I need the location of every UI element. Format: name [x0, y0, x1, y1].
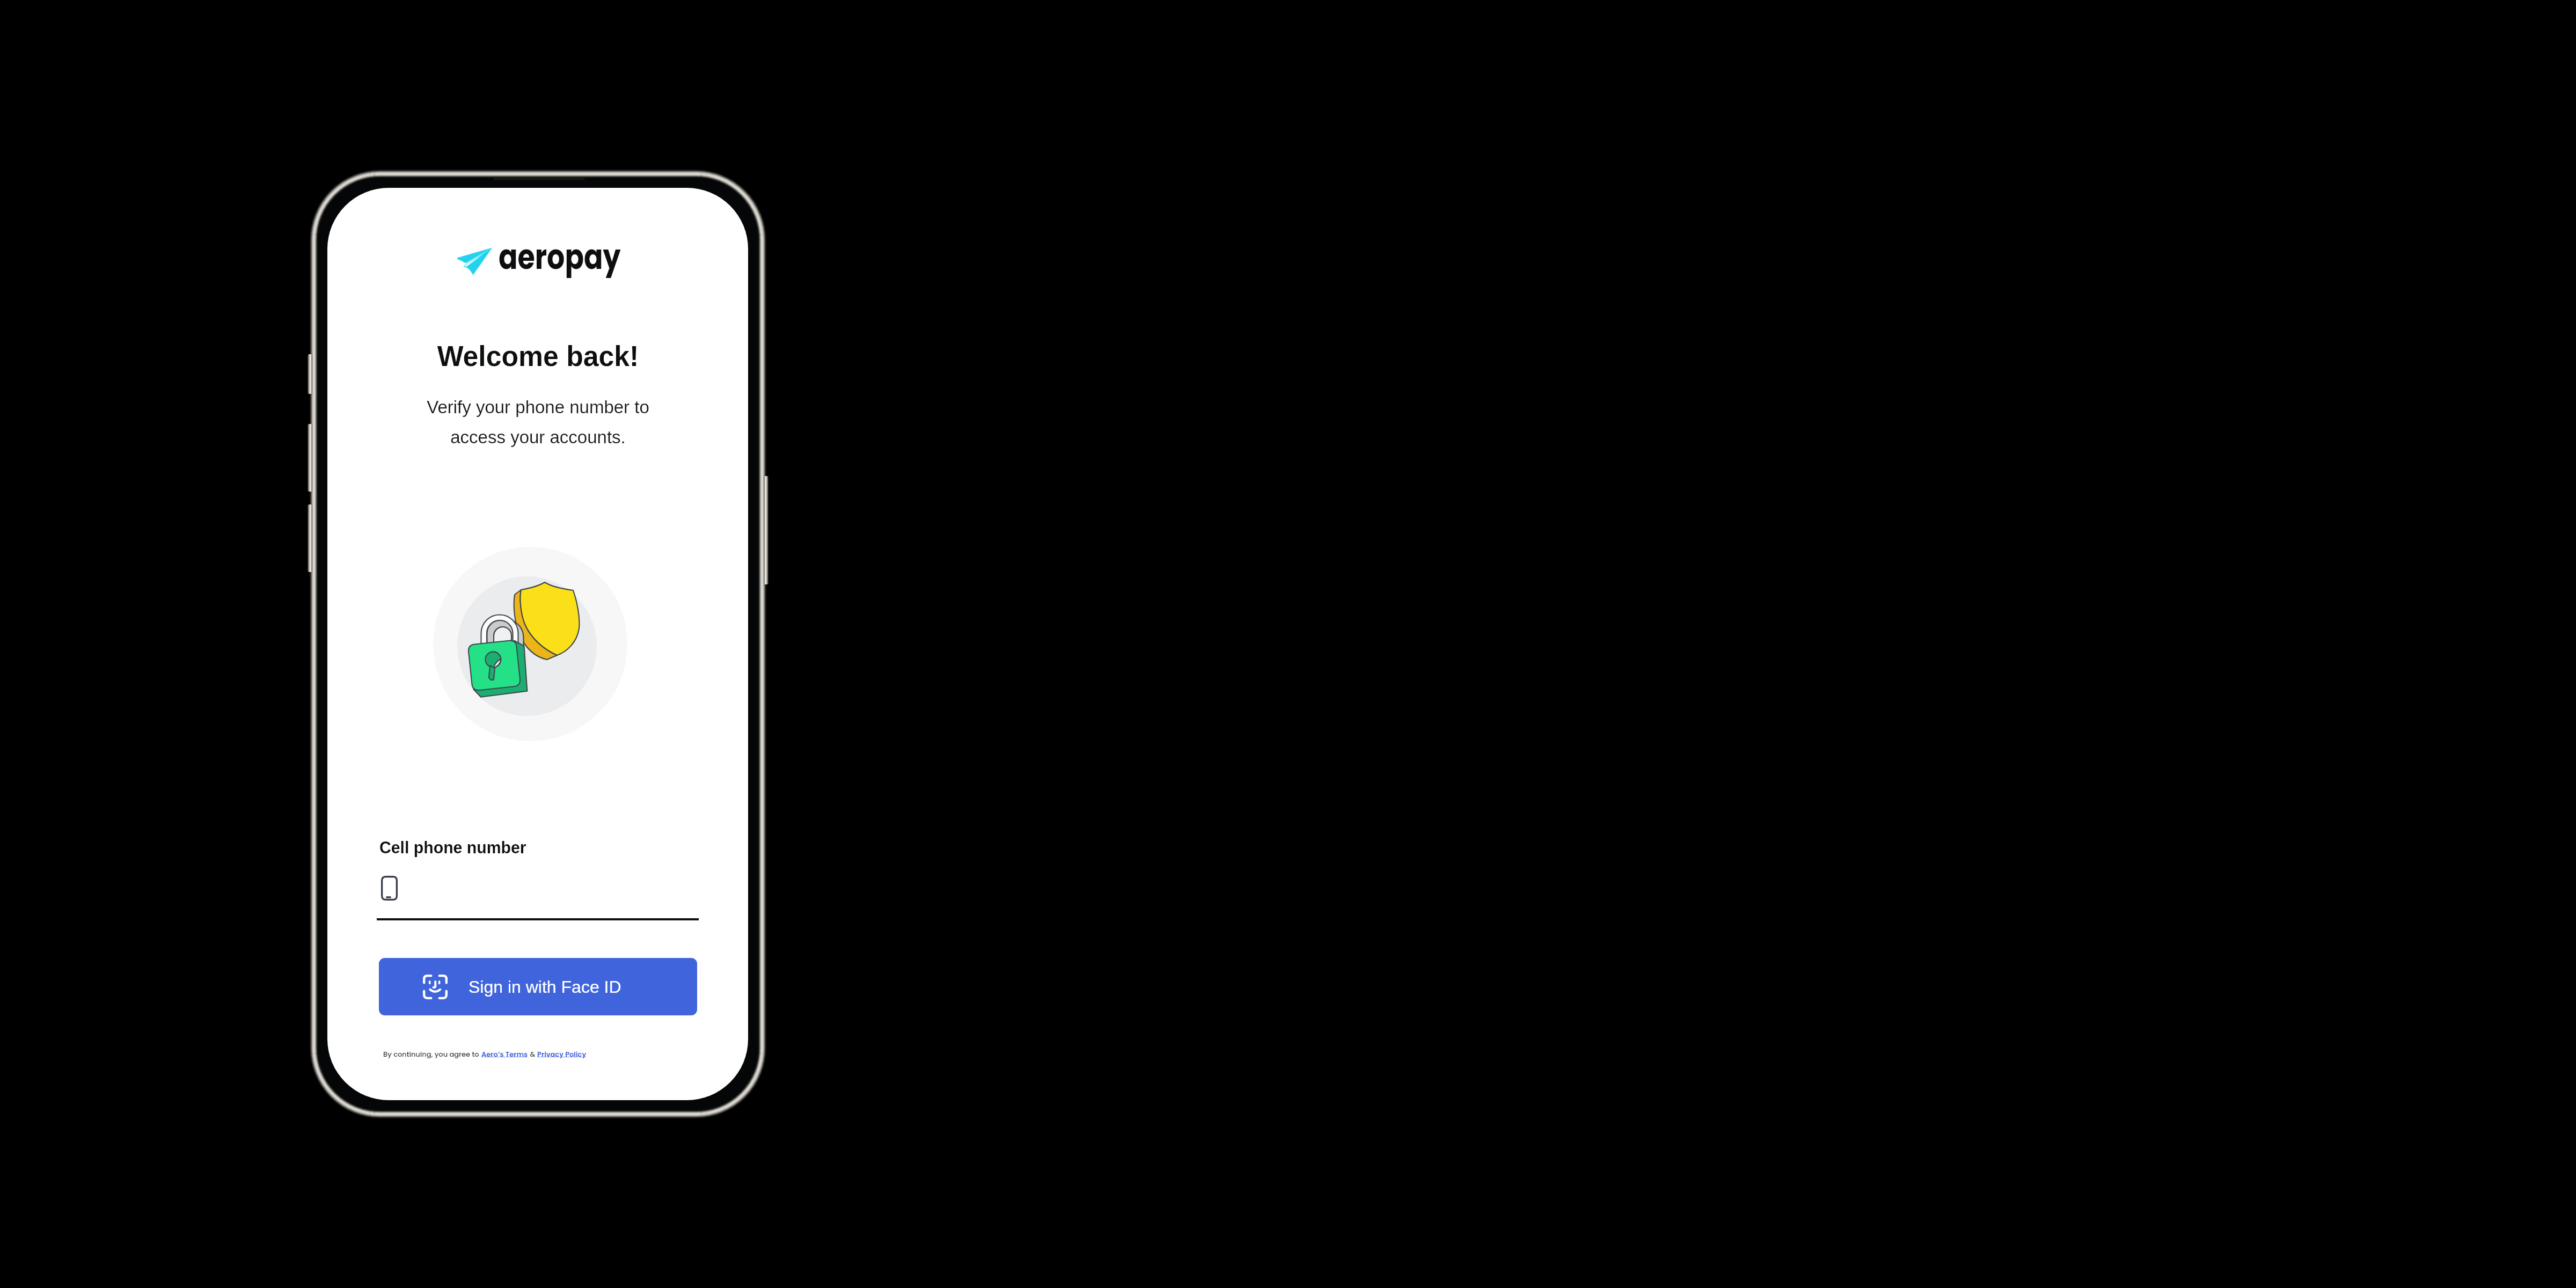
button[interactable]: Privacy Policy	[537, 1049, 587, 1059]
button[interactable]: Aero’s Terms	[481, 1049, 528, 1059]
staticText: Welcome back!	[437, 340, 639, 372]
staticText: Aero’s Terms	[481, 1049, 528, 1059]
staticText: &	[528, 1049, 537, 1059]
staticText: By continuing, you agree to	[383, 1049, 481, 1059]
staticText: aeropay	[499, 233, 621, 281]
staticText: Verify your phone number to access your …	[427, 397, 649, 447]
other: Face ID	[423, 975, 448, 999]
button[interactable]: Cell phone number field	[377, 867, 699, 920]
button[interactable]: Face ID	[379, 958, 697, 1015]
staticText: Cell phone number	[379, 838, 526, 857]
staticText: Privacy Policy	[537, 1049, 587, 1059]
staticText: Sign in with Face ID	[469, 977, 621, 997]
